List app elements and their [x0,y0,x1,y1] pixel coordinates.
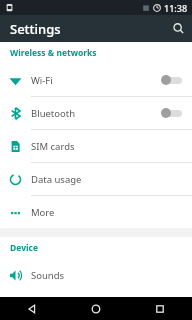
button[interactable]: Bluetooth [0,97,192,129]
button[interactable]: Wi-Fi [0,64,192,96]
button[interactable]: SIM cards [0,130,192,162]
staticText: Device [10,242,38,254]
staticText: SIM cards [31,140,192,153]
staticText: Data usage [31,173,192,186]
button[interactable]: Search [165,15,192,42]
button[interactable]: Data usage [0,163,192,195]
button[interactable]: Sounds [0,259,192,291]
button[interactable]: More [0,196,192,228]
button[interactable]: Home [64,297,128,320]
staticText: Sounds [31,269,192,282]
staticText: Bluetooth [31,107,161,120]
staticText: Wireless & networks [10,47,97,59]
staticText: 11:38 [164,2,188,14]
button[interactable]: Back [0,297,64,320]
staticText: Wi-Fi [31,74,161,87]
staticText: More [31,206,192,219]
staticText: Settings [10,20,61,38]
button[interactable]: Recents [128,297,192,320]
